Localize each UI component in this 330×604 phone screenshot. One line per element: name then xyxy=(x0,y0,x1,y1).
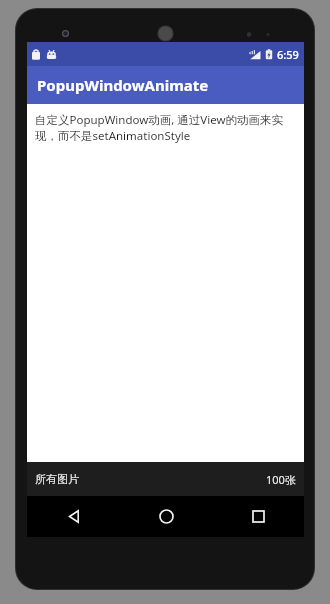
button[interactable]: Home xyxy=(120,496,212,537)
staticText: 自定义PopupWindow动画, 通过View的动画来实现，而不是setAni… xyxy=(35,112,294,143)
button[interactable]: Recent apps xyxy=(212,496,304,537)
staticText: 6:59 xyxy=(277,47,299,62)
button[interactable]: Back xyxy=(27,496,120,537)
button[interactable]: 所有图片 xyxy=(27,462,304,496)
button[interactable]: PopupWindowAnimate xyxy=(27,66,304,104)
staticText: 100张 xyxy=(266,472,296,487)
staticText: PopupWindowAnimate xyxy=(37,75,209,95)
staticText: 所有图片 xyxy=(35,472,79,486)
